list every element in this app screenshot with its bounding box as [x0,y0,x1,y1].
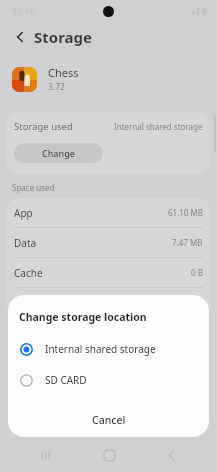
button[interactable]: Back [8,25,32,49]
button[interactable]: Recent apps [29,438,63,472]
staticText: Cache [14,266,43,280]
staticText: Change [42,147,75,159]
button[interactable]: Cache [6,258,211,287]
staticText: 10:00 [12,5,36,17]
staticText: SD CARD [45,373,87,387]
staticText: Space used [12,182,55,193]
staticText: Internal shared storage [114,121,203,132]
staticText: 3.72 [48,81,65,93]
button[interactable]: Change [14,143,103,163]
staticText: Chess [48,65,79,80]
staticText: Cancel [92,413,126,427]
button[interactable]: Total [6,288,211,317]
staticText: Storage [34,27,92,47]
staticText: Internal shared storage [45,342,156,356]
staticText: 0 B [191,267,203,278]
button[interactable]: App [6,198,211,227]
staticText: Total [14,296,37,310]
staticText: Storage used [14,120,73,133]
button[interactable]: Internal shared storage [8,336,209,362]
button[interactable]: Data [6,228,211,257]
button[interactable]: Home [92,438,126,472]
staticText: Data [14,236,37,250]
staticText: App [14,206,33,220]
staticText: 7.47 MB [172,237,203,248]
button[interactable]: Cancel [8,403,209,437]
staticText: Change storage location [19,310,147,324]
button[interactable]: SD CARD [8,367,209,393]
staticText: 61.10 MB [168,207,203,218]
